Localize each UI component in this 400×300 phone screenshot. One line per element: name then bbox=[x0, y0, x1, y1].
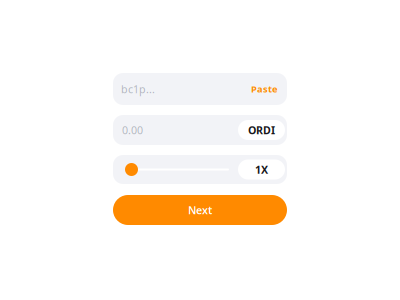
staticText: bc1p... bbox=[121, 82, 155, 96]
staticText: ORDI bbox=[248, 123, 275, 137]
button[interactable]: 0.00 bbox=[113, 115, 287, 145]
button[interactable]: Fee rate bbox=[125, 163, 138, 176]
staticText: Paste bbox=[251, 83, 278, 95]
staticText: 1X bbox=[255, 162, 268, 177]
button[interactable]: 1X bbox=[238, 159, 285, 179]
button[interactable]: Paste bbox=[239, 76, 278, 102]
staticText: Next bbox=[188, 203, 212, 217]
button[interactable]: ORDI bbox=[238, 120, 285, 140]
staticText: 0.00 bbox=[122, 123, 143, 137]
button[interactable]: Next bbox=[113, 195, 287, 225]
button[interactable]: bc1p... bbox=[113, 73, 287, 105]
